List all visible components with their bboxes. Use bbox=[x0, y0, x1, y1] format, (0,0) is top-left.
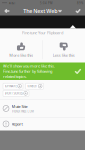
staticText: TUMBLR bbox=[27, 84, 37, 88]
button[interactable]: Report bbox=[0, 117, 85, 130]
button[interactable]: SHORT STORIES bbox=[3, 90, 29, 96]
staticText: THENEXTWEB.COM bbox=[12, 110, 34, 113]
staticText: We'll show you more like this. Fine-tune… bbox=[3, 63, 55, 79]
staticText: The Next Web bbox=[23, 7, 57, 15]
staticText: Fine-tune Your Flipboard bbox=[22, 30, 63, 35]
staticText: ••••• AT&T bbox=[2, 1, 15, 5]
staticText: 5:04 PM bbox=[40, 1, 52, 5]
staticText: Mute Site bbox=[12, 104, 28, 109]
staticText: SHORT STORIES bbox=[4, 92, 22, 95]
button[interactable]: SOFTWARE bbox=[3, 83, 23, 89]
button[interactable]: Less like this bbox=[43, 37, 85, 62]
button[interactable]: More like this bbox=[0, 37, 42, 62]
staticText: More like this bbox=[9, 52, 33, 58]
staticText: SOFTWARE bbox=[4, 84, 16, 88]
button[interactable]: Mute Site bbox=[0, 100, 85, 117]
staticText: Less like this bbox=[53, 52, 75, 58]
staticText: 89% bbox=[77, 1, 83, 5]
button[interactable]: Done bbox=[71, 6, 85, 15]
button[interactable]: The Next Web bbox=[23, 7, 62, 15]
button[interactable]: TUMBLR bbox=[26, 83, 44, 89]
button[interactable]: Back bbox=[0, 6, 14, 15]
staticText: Report bbox=[12, 121, 23, 127]
